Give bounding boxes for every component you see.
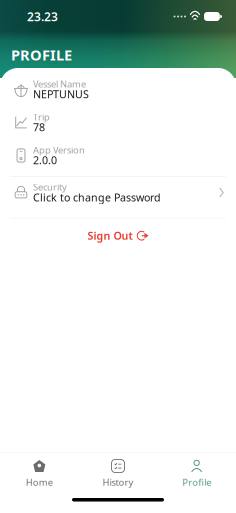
staticText: 23.23: [27, 8, 58, 24]
staticText: App Version: [33, 144, 85, 156]
staticText: NEPTUNUS: [33, 87, 89, 101]
staticText: Click to change Password: [33, 190, 161, 204]
staticText: Home: [26, 476, 53, 488]
staticText: Vessel Name: [33, 78, 86, 90]
button[interactable]: Profile: [157, 455, 236, 492]
staticText: Profile: [182, 476, 211, 488]
button[interactable]: History: [79, 455, 157, 492]
staticText: History: [102, 476, 133, 488]
button[interactable]: Sign Out: [0, 219, 236, 251]
staticText: 2.0.0: [33, 153, 57, 167]
staticText: Trip: [33, 111, 50, 123]
staticText: Sign Out: [87, 229, 132, 243]
staticText: Security: [33, 181, 67, 193]
staticText: 78: [33, 120, 45, 134]
staticText: PROFILE: [11, 45, 72, 64]
button[interactable]: Security: [0, 177, 236, 218]
button[interactable]: Home: [0, 455, 79, 492]
